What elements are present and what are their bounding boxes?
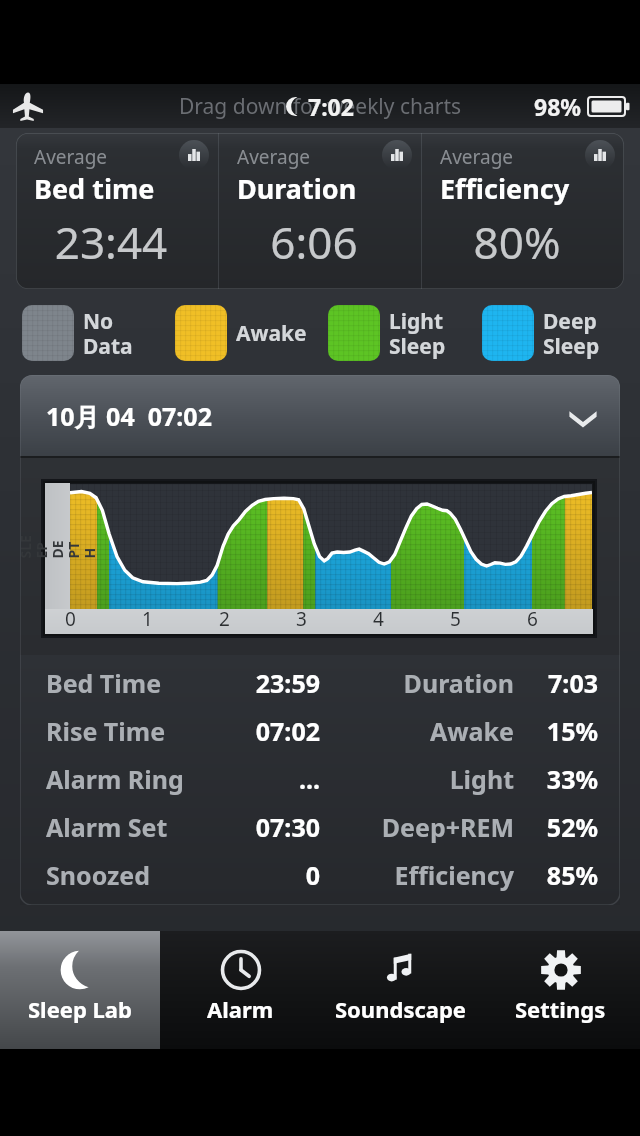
button[interactable]: Rise Time	[20, 707, 620, 755]
staticText: 3	[296, 606, 307, 632]
staticText: Snoozed	[46, 858, 196, 892]
button[interactable]: Show Duration chart	[382, 140, 412, 170]
other: Collapse	[566, 399, 600, 433]
staticText: 7:02	[308, 91, 354, 122]
staticText: Average	[440, 144, 514, 170]
staticText: 2	[219, 606, 230, 632]
staticText: 52%	[514, 810, 598, 844]
staticText: 0	[196, 858, 320, 892]
staticText: SLEEP DEPTH	[20, 532, 98, 558]
staticText: 98%	[534, 91, 582, 122]
button[interactable]: Deep Sleep	[476, 305, 630, 361]
staticText: 33%	[514, 762, 598, 796]
staticText: Awake	[429, 714, 514, 748]
button[interactable]: Snoozed	[20, 851, 620, 899]
button[interactable]: Awake	[169, 305, 322, 361]
button[interactable]: Average	[422, 133, 624, 289]
staticText: 10月 04 07:02	[46, 399, 212, 433]
staticText: Awake	[236, 319, 307, 348]
button[interactable]: Average	[16, 133, 218, 289]
staticText: 7:03	[514, 666, 598, 700]
staticText: 0	[65, 606, 76, 632]
staticText: Drag down for weekly charts	[179, 92, 462, 121]
staticText: 1	[142, 606, 153, 632]
staticText: 23:44	[22, 212, 200, 272]
staticText: Soundscape	[335, 994, 466, 1024]
staticText: Duration	[237, 170, 357, 207]
staticText: 6:06	[225, 212, 403, 272]
staticText: 07:02	[196, 714, 320, 748]
staticText: Efficiency	[440, 170, 570, 207]
staticText: 15%	[514, 714, 598, 748]
staticText: 5	[450, 606, 461, 632]
button[interactable]: Bed Time	[20, 659, 620, 707]
staticText: 23:59	[196, 666, 320, 700]
staticText: Settings	[515, 994, 606, 1024]
button[interactable]: Soundscape	[320, 931, 480, 1049]
button[interactable]: Settings	[480, 931, 640, 1049]
staticText: Light	[449, 762, 514, 796]
button[interactable]: Average	[219, 133, 421, 289]
staticText: Light Sleep	[389, 307, 446, 360]
staticText: Efficiency	[394, 858, 514, 892]
staticText: Alarm Ring	[46, 762, 196, 796]
staticText: Duration	[403, 666, 514, 700]
staticText: Alarm	[207, 994, 274, 1024]
staticText: Alarm Set	[46, 810, 196, 844]
button[interactable]: Sleep Lab	[0, 931, 160, 1049]
button[interactable]: Show Bed time chart	[179, 140, 209, 170]
staticText: No Data	[83, 307, 133, 360]
staticText: 80%	[428, 212, 606, 272]
button[interactable]: Light Sleep	[322, 305, 476, 361]
staticText: Rise Time	[46, 714, 196, 748]
staticText: Bed time	[34, 170, 155, 207]
button[interactable]: Alarm Set	[20, 803, 620, 851]
staticText: Average	[237, 144, 311, 170]
staticText: Bed Time	[46, 666, 196, 700]
staticText: Average	[34, 144, 108, 170]
button[interactable]: Alarm	[160, 931, 320, 1049]
staticText: Sleep Lab	[28, 994, 132, 1024]
staticText: Deep+REM	[381, 810, 514, 844]
staticText: 07:30	[196, 810, 320, 844]
staticText: 4	[373, 606, 384, 632]
staticText: 6	[527, 606, 538, 632]
button[interactable]: Alarm Ring	[20, 755, 620, 803]
staticText: ...	[196, 762, 320, 796]
staticText: 85%	[514, 858, 598, 892]
button[interactable]: Show Efficiency chart	[585, 140, 615, 170]
button[interactable]: 10月 04 07:02	[20, 375, 620, 456]
button[interactable]: No Data	[16, 305, 169, 361]
staticText: Deep Sleep	[543, 307, 600, 360]
